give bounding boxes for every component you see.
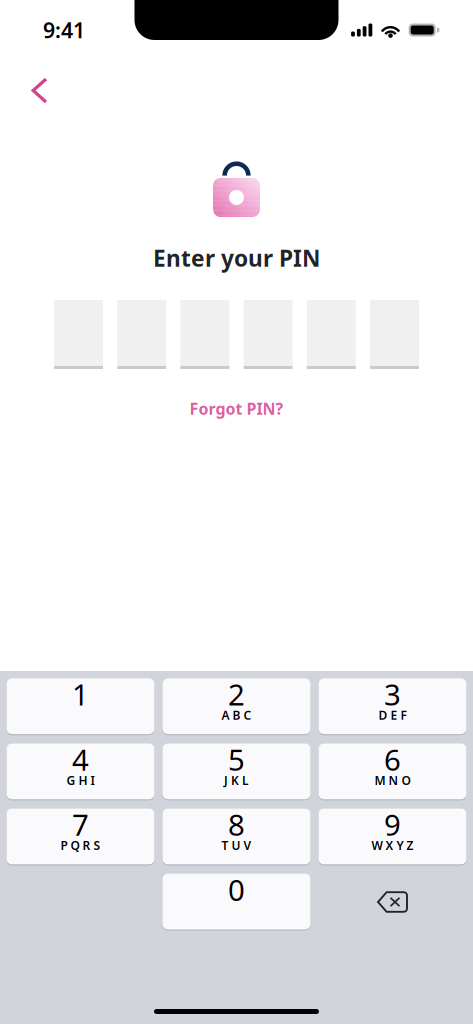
button[interactable]: 7	[6, 808, 154, 865]
button[interactable]: 4	[6, 743, 154, 800]
staticText: 7	[72, 805, 89, 844]
staticText: Forgot PIN?	[189, 398, 283, 419]
button[interactable]: 6	[318, 743, 466, 800]
button[interactable]: 2	[162, 678, 310, 735]
staticText: M N O	[374, 772, 410, 788]
button[interactable]: Forgot PIN?	[181, 398, 291, 419]
staticText: 5	[228, 740, 245, 779]
staticText: 1	[72, 675, 89, 714]
staticText: 4	[72, 740, 89, 779]
button[interactable]: 8	[162, 808, 310, 865]
staticText: W X Y Z	[371, 837, 413, 853]
staticText: D E F	[378, 707, 406, 723]
staticText: G H I	[66, 772, 94, 788]
button[interactable]: 1	[6, 678, 154, 735]
button[interactable]: Back	[19, 44, 60, 115]
staticText: 0	[228, 870, 245, 909]
staticText: Enter your PIN	[153, 243, 320, 273]
staticText: 9	[384, 805, 401, 844]
staticText: J K L	[224, 772, 249, 788]
button[interactable]: Delete	[318, 873, 466, 930]
staticText: P Q R S	[60, 837, 100, 853]
staticText: 8	[228, 805, 245, 844]
button[interactable]: 0	[162, 873, 310, 930]
button[interactable]: 5	[162, 743, 310, 800]
staticText: 2	[228, 675, 245, 714]
staticText: 3	[384, 675, 401, 714]
staticText: A B C	[221, 707, 251, 723]
button[interactable]: 9	[318, 808, 466, 865]
staticText: 9:41	[43, 16, 85, 44]
staticText: 6	[384, 740, 401, 779]
staticText: T U V	[221, 837, 251, 853]
button[interactable]: 3	[318, 678, 466, 735]
